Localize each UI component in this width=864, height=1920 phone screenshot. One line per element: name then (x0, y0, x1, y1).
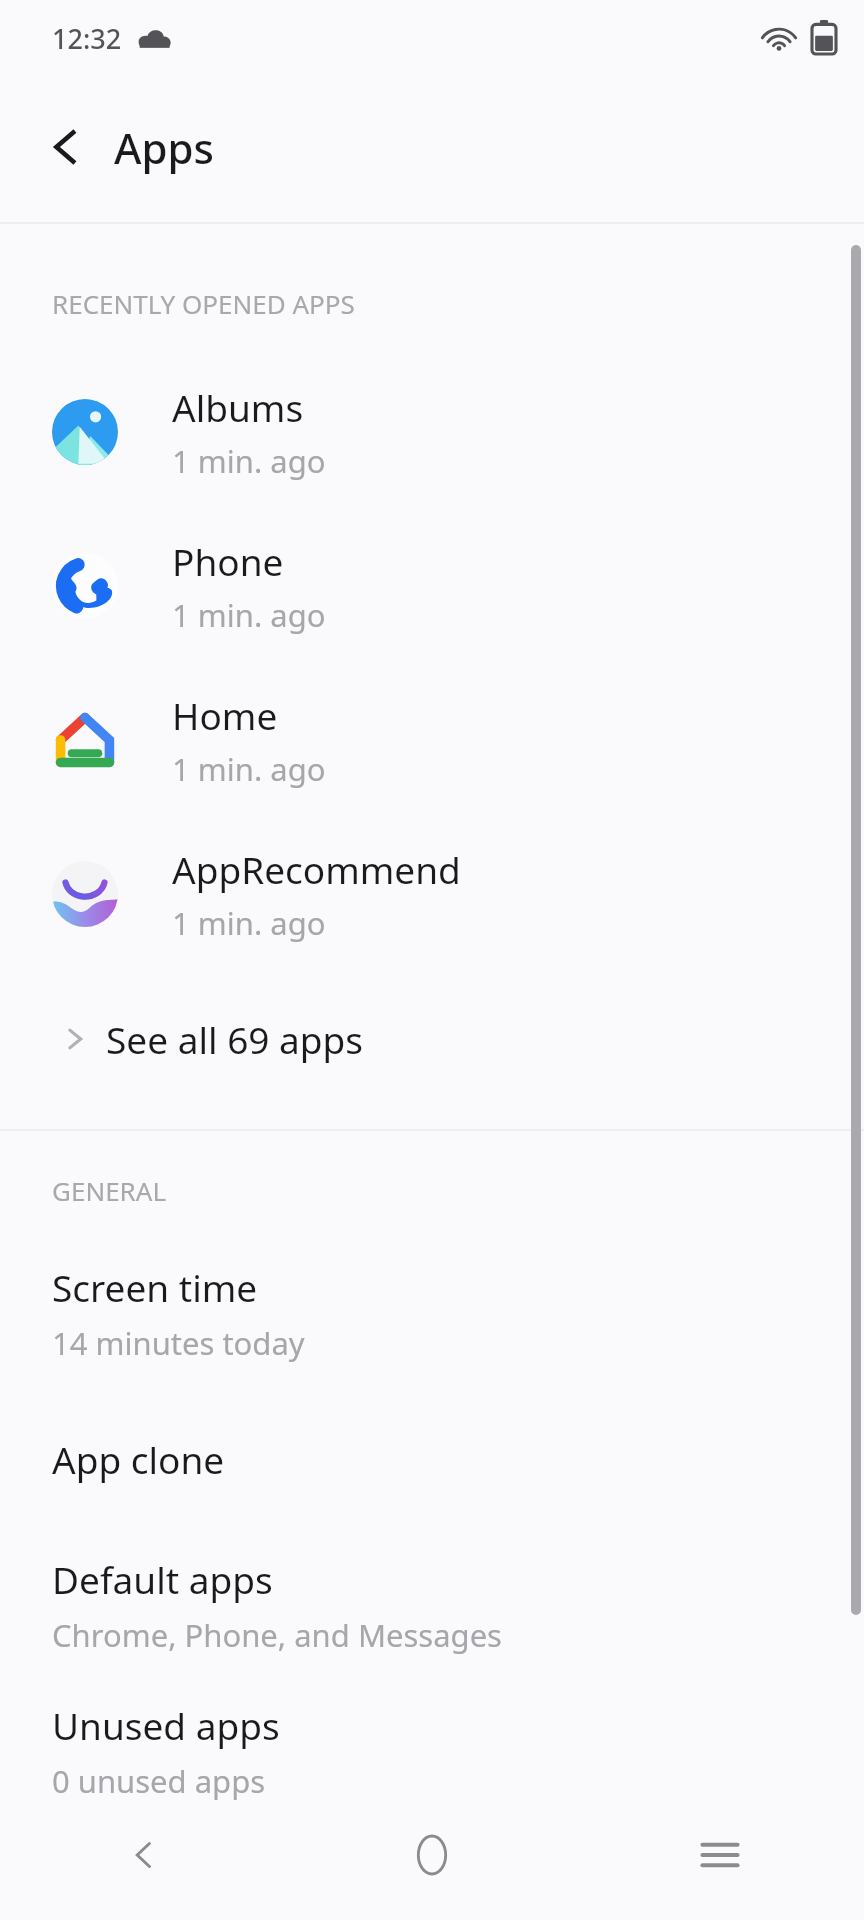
staticText: Unused apps (52, 1700, 280, 1750)
staticText: AppRecommend (172, 844, 461, 894)
button[interactable]: Recent apps (576, 1790, 864, 1920)
staticText: 1 min. ago (172, 440, 326, 482)
staticText: App clone (52, 1434, 225, 1484)
staticText: 0 unused apps (52, 1760, 266, 1802)
button[interactable]: App clone (0, 1386, 864, 1532)
button[interactable]: Albums (0, 355, 864, 509)
staticText: See all 69 apps (106, 1014, 364, 1064)
button[interactable]: Unused apps (0, 1678, 864, 1824)
staticText: Chrome, Phone, and Messages (52, 1614, 502, 1656)
button[interactable]: AppRecommend (0, 817, 864, 971)
staticText: GENERAL (52, 1173, 167, 1208)
staticText: RECENTLY OPENED APPS (52, 286, 355, 321)
staticText: Phone (172, 536, 284, 586)
button[interactable]: See all 69 apps (0, 991, 864, 1087)
button[interactable]: Back (30, 111, 102, 183)
button[interactable]: Screen time (0, 1240, 864, 1386)
staticText: 1 min. ago (172, 748, 326, 790)
staticText: Default apps (52, 1554, 273, 1604)
staticText: Apps (114, 119, 215, 176)
staticText: Albums (172, 382, 304, 432)
button[interactable]: Phone (0, 509, 864, 663)
button[interactable]: Back (0, 1790, 288, 1920)
button[interactable]: Default apps (0, 1532, 864, 1678)
staticText: 1 min. ago (172, 902, 326, 944)
button[interactable]: Home (288, 1790, 576, 1920)
staticText: Screen time (52, 1262, 258, 1312)
staticText: 14 minutes today (52, 1322, 305, 1364)
staticText: 1 min. ago (172, 594, 326, 636)
staticText: 12:32 (52, 20, 122, 57)
button[interactable]: Home (0, 663, 864, 817)
staticText: Home (172, 690, 278, 740)
